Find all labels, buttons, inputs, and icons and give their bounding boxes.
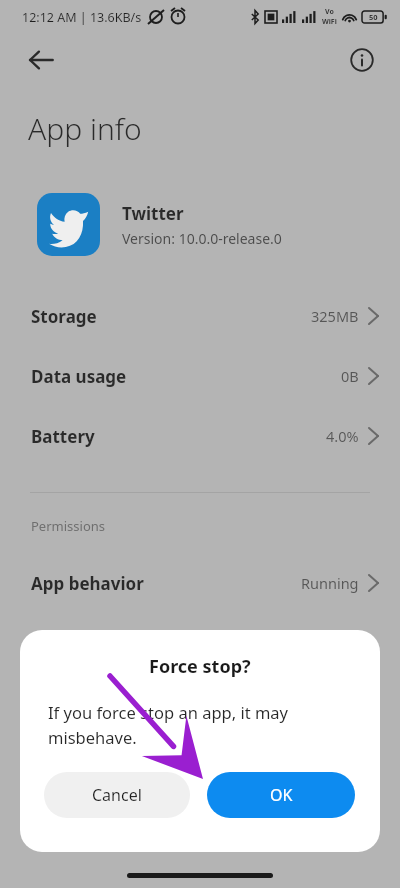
staticText: App info — [28, 108, 142, 149]
staticText: Version: 10.0.0-release.0 — [122, 229, 282, 248]
staticText: Twitter — [122, 202, 184, 225]
staticText: Cancel — [92, 784, 142, 806]
staticText: Battery — [31, 425, 95, 448]
button[interactable]: Back — [17, 36, 65, 84]
staticText: OK — [270, 784, 293, 806]
staticText: App behavior — [31, 572, 144, 595]
staticText: Running — [301, 573, 359, 593]
staticText: Force stop? — [149, 654, 251, 679]
staticText: Data usage — [31, 365, 127, 388]
button[interactable]: Background autostart — [0, 613, 400, 673]
button[interactable]: App details — [340, 38, 384, 82]
staticText: Storage — [31, 305, 97, 328]
button[interactable]: Data usage — [0, 346, 400, 406]
staticText: WiFi — [322, 17, 337, 27]
staticText: Vo — [325, 7, 334, 17]
staticText: Permissions — [31, 517, 106, 535]
staticText: 325MB — [311, 306, 359, 326]
button[interactable]: Battery — [0, 406, 400, 466]
staticText: 12:12 AM | 13.6KB/s — [22, 9, 142, 26]
staticText: 0B — [341, 366, 359, 386]
button[interactable]: App behavior — [0, 553, 400, 613]
button[interactable]: OK — [207, 772, 355, 818]
staticText: 4.0% — [326, 426, 359, 446]
button[interactable]: Storage — [0, 286, 400, 346]
button[interactable]: Cancel — [44, 772, 190, 818]
staticText: 50 — [369, 12, 378, 22]
staticText: If you force stop an app, it may misbeha… — [48, 701, 288, 748]
